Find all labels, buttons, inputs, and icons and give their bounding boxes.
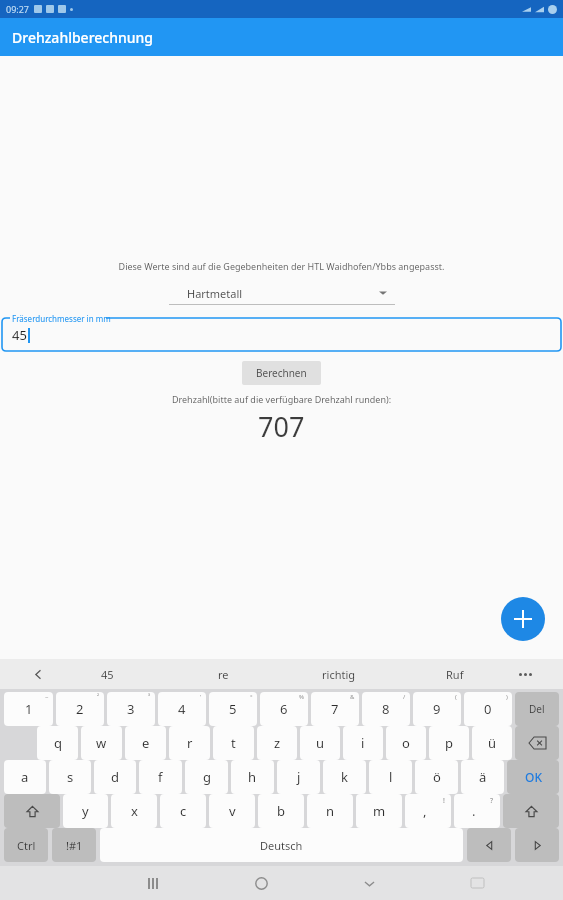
button[interactable]: z	[257, 726, 297, 760]
button[interactable]: d	[94, 760, 136, 794]
staticText: i	[361, 734, 365, 752]
button[interactable]: x	[111, 794, 157, 828]
button[interactable]: 2	[56, 692, 104, 726]
staticText: r	[187, 734, 193, 752]
button[interactable]: t	[213, 726, 254, 760]
button[interactable]: 1	[4, 692, 53, 726]
staticText: j	[297, 768, 301, 786]
button[interactable]: Umschalt	[503, 794, 559, 828]
staticText: ö	[433, 768, 441, 786]
button[interactable]: w	[81, 726, 122, 760]
staticText: Drehzahl(bitte auf die verfügbare Drehza…	[0, 393, 563, 405]
button[interactable]: 5	[209, 692, 257, 726]
button[interactable]: p	[429, 726, 469, 760]
button[interactable]: .	[454, 794, 500, 828]
button[interactable]: g	[185, 760, 228, 794]
staticText: h	[248, 768, 257, 786]
button[interactable]: Umschalt	[4, 794, 60, 828]
staticText: Deutsch	[260, 838, 303, 853]
staticText: re	[218, 667, 229, 682]
button[interactable]: Ruf	[397, 659, 513, 689]
button[interactable]: a	[4, 760, 46, 794]
button[interactable]: !#1	[52, 828, 96, 862]
button[interactable]: 0	[464, 692, 512, 726]
staticText: Berechnen	[256, 366, 307, 380]
button[interactable]: r	[169, 726, 210, 760]
button[interactable]: Zurück	[26, 659, 50, 689]
staticText: °	[250, 693, 253, 701]
button[interactable]: Löschen	[515, 726, 559, 760]
button[interactable]: 3	[107, 692, 155, 726]
button[interactable]: 7	[311, 692, 359, 726]
button[interactable]: Hinzufügen	[501, 597, 545, 641]
button[interactable]: y	[63, 794, 108, 828]
button[interactable]: 8	[362, 692, 410, 726]
button[interactable]: i	[343, 726, 383, 760]
button[interactable]: Deutsch	[100, 828, 463, 862]
staticText: o	[402, 734, 410, 752]
button[interactable]: o	[386, 726, 426, 760]
staticText: 0	[484, 700, 492, 718]
staticText: Fräserdurchmesser in mm	[12, 313, 111, 324]
button[interactable]: 45	[50, 659, 165, 689]
button[interactable]: ,	[405, 794, 451, 828]
button[interactable]: h	[231, 760, 274, 794]
staticText: a	[21, 768, 29, 786]
staticText: 2	[76, 700, 84, 718]
button[interactable]: e	[125, 726, 166, 760]
button[interactable]: OK	[507, 760, 559, 794]
button[interactable]: 4	[158, 692, 206, 726]
button[interactable]: m	[356, 794, 402, 828]
staticText: k	[341, 768, 348, 786]
staticText: c	[180, 802, 187, 820]
button[interactable]: u	[300, 726, 340, 760]
staticText: 45	[12, 326, 27, 344]
button[interactable]: ä	[461, 760, 504, 794]
button[interactable]: f	[139, 760, 182, 794]
button[interactable]: v	[209, 794, 255, 828]
button[interactable]: n	[307, 794, 353, 828]
button[interactable]: Tastatur ausblenden	[315, 866, 423, 900]
button[interactable]: Links	[467, 828, 511, 862]
button[interactable]: Del	[515, 692, 559, 726]
button[interactable]: c	[160, 794, 206, 828]
staticText: p	[445, 734, 453, 752]
button[interactable]: ö	[415, 760, 458, 794]
staticText: ä	[479, 768, 487, 786]
button[interactable]: Letzte Apps	[98, 866, 207, 900]
button[interactable]: 9	[413, 692, 461, 726]
staticText: y	[82, 802, 89, 820]
button[interactable]: j	[277, 760, 320, 794]
button[interactable]: k	[323, 760, 366, 794]
staticText: l	[389, 768, 393, 786]
staticText: 8	[382, 700, 390, 718]
button[interactable]: l	[369, 760, 412, 794]
staticText: q	[54, 734, 62, 752]
staticText: &	[350, 693, 355, 701]
button[interactable]: s	[49, 760, 91, 794]
button[interactable]: 6	[260, 692, 308, 726]
button[interactable]: Ctrl	[4, 828, 48, 862]
button[interactable]: richtig	[281, 659, 397, 689]
button[interactable]: Hartmetall	[169, 282, 395, 305]
button[interactable]: q	[37, 726, 78, 760]
button[interactable]: Startseite	[207, 866, 315, 900]
staticText: %	[299, 693, 304, 701]
button[interactable]: Mehr	[513, 659, 537, 689]
button[interactable]: Rechts	[515, 828, 559, 862]
staticText: 7	[331, 700, 339, 718]
staticText: ²	[97, 693, 100, 701]
staticText: b	[277, 802, 285, 820]
staticText: x	[131, 802, 138, 820]
button[interactable]: re	[165, 659, 281, 689]
button[interactable]: Berechnen	[242, 361, 321, 385]
staticText: d	[111, 768, 119, 786]
staticText: /	[403, 693, 406, 701]
button[interactable]: Fräserdurchmesser in mm	[2, 313, 561, 351]
button[interactable]: b	[258, 794, 304, 828]
staticText: w	[96, 734, 107, 752]
staticText: 6	[280, 700, 288, 718]
button[interactable]: ü	[472, 726, 512, 760]
staticText: OK	[525, 769, 542, 785]
